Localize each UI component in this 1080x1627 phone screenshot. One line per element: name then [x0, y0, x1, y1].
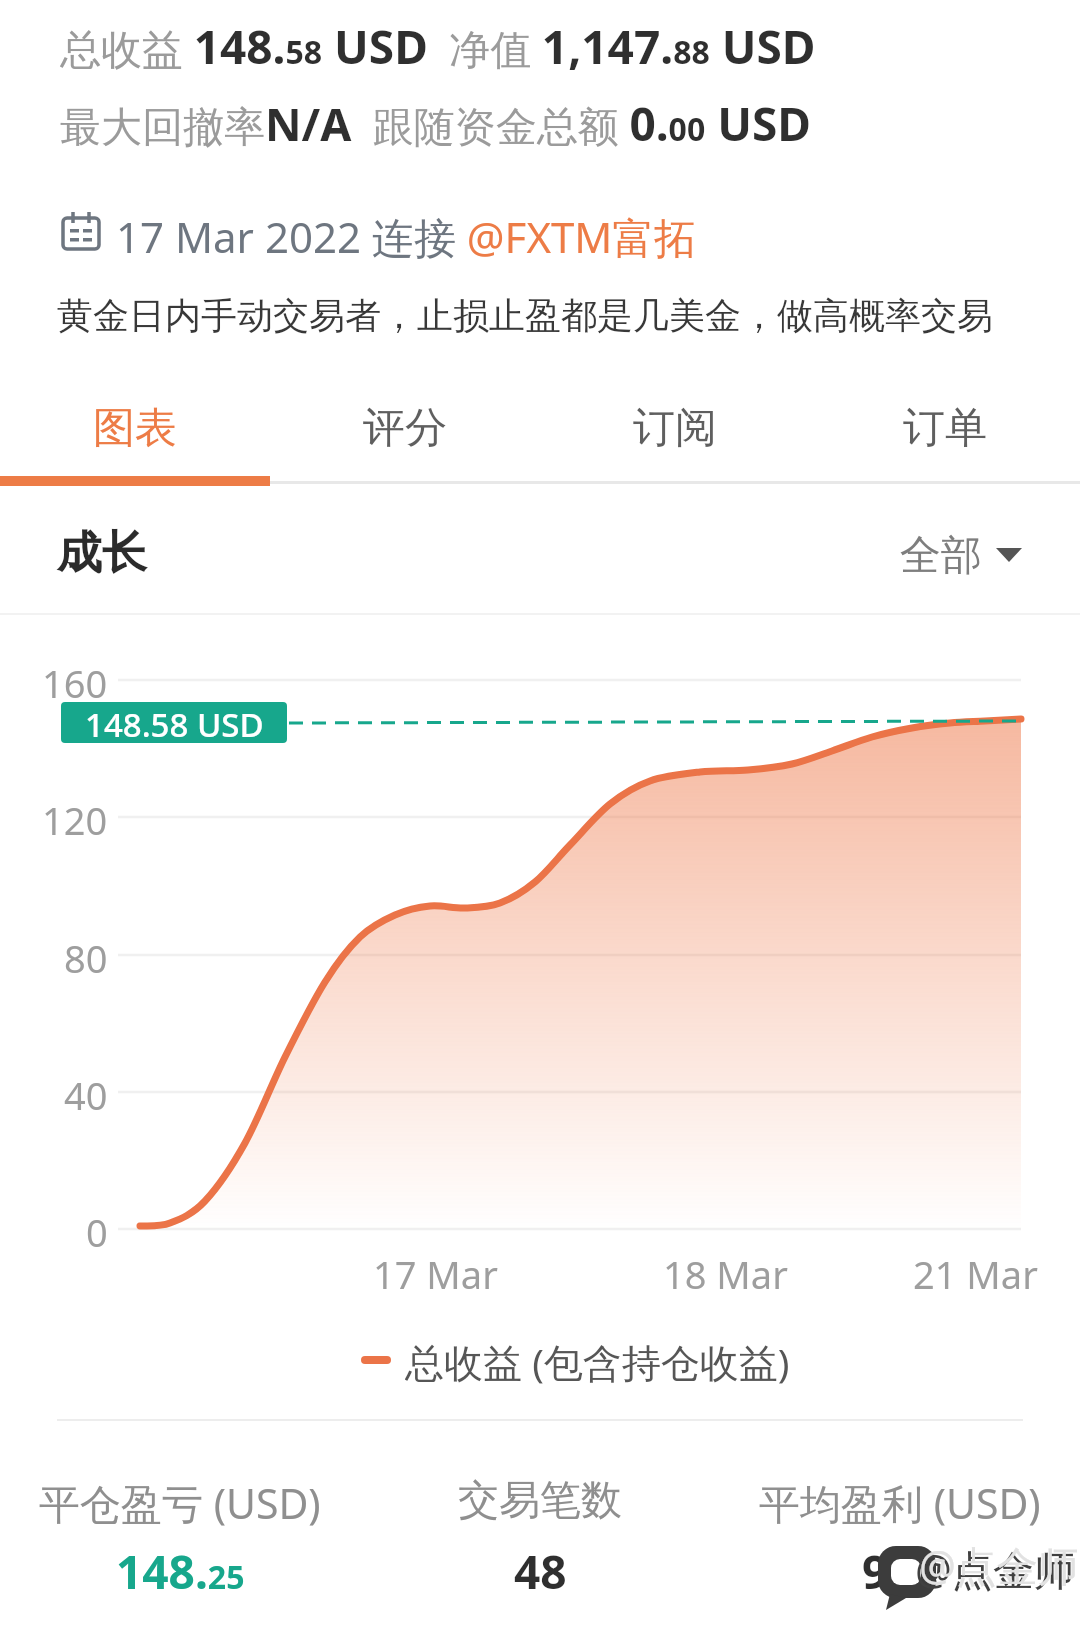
staticText: 评分 — [363, 402, 447, 455]
staticText: 148.25 — [116, 1540, 245, 1603]
staticText: 17 Mar 2022 连接 @FXTM富拓 — [116, 208, 697, 265]
staticText: 40 — [64, 1069, 108, 1121]
button[interactable]: 订单 — [810, 398, 1080, 458]
staticText: @点金师 — [919, 1537, 1079, 1593]
staticText: 成长 — [57, 525, 147, 582]
staticText: 平仓盈亏 (USD) — [39, 1475, 321, 1531]
staticText: 48 — [514, 1540, 567, 1603]
button[interactable]: 订阅 — [540, 398, 810, 458]
staticText: 全部 — [900, 530, 982, 582]
staticText: 交易笔数 — [458, 1475, 622, 1527]
staticText: 0 — [86, 1206, 108, 1258]
staticText: 最大回撤率N/A 跟随资金总额 0.00 USD — [60, 92, 811, 155]
staticText: @点金师 — [915, 1541, 1075, 1597]
button[interactable]: 评分 — [270, 398, 540, 458]
button[interactable]: 全部 — [900, 530, 1022, 582]
button[interactable]: 17 Mar 2022 连接 @FXTM富拓 — [116, 208, 697, 265]
staticText: 21 Mar — [913, 1248, 1038, 1300]
staticText: 120 — [42, 794, 108, 846]
staticText: 订单 — [903, 402, 987, 455]
staticText: 160 — [42, 657, 108, 709]
staticText: 17 Mar — [373, 1248, 498, 1300]
staticText: 平均盈利 (USD) — [759, 1475, 1041, 1531]
staticText: 148.58 USD — [85, 702, 264, 743]
staticText: 总收益 148.58 USD 净值 1,147.88 USD — [60, 15, 816, 78]
staticText: 黄金日内手动交易者，止损止盈都是几美金，做高概率交易 — [57, 293, 993, 338]
staticText: 80 — [64, 932, 108, 984]
staticText: 18 Mar — [663, 1248, 788, 1300]
staticText: 订阅 — [633, 402, 717, 455]
button[interactable]: 图表 — [0, 398, 270, 458]
staticText: 图表 — [93, 402, 177, 455]
staticText: 9.83 — [862, 1540, 938, 1603]
staticText: 总收益 (包含持仓收益) — [405, 1335, 790, 1385]
